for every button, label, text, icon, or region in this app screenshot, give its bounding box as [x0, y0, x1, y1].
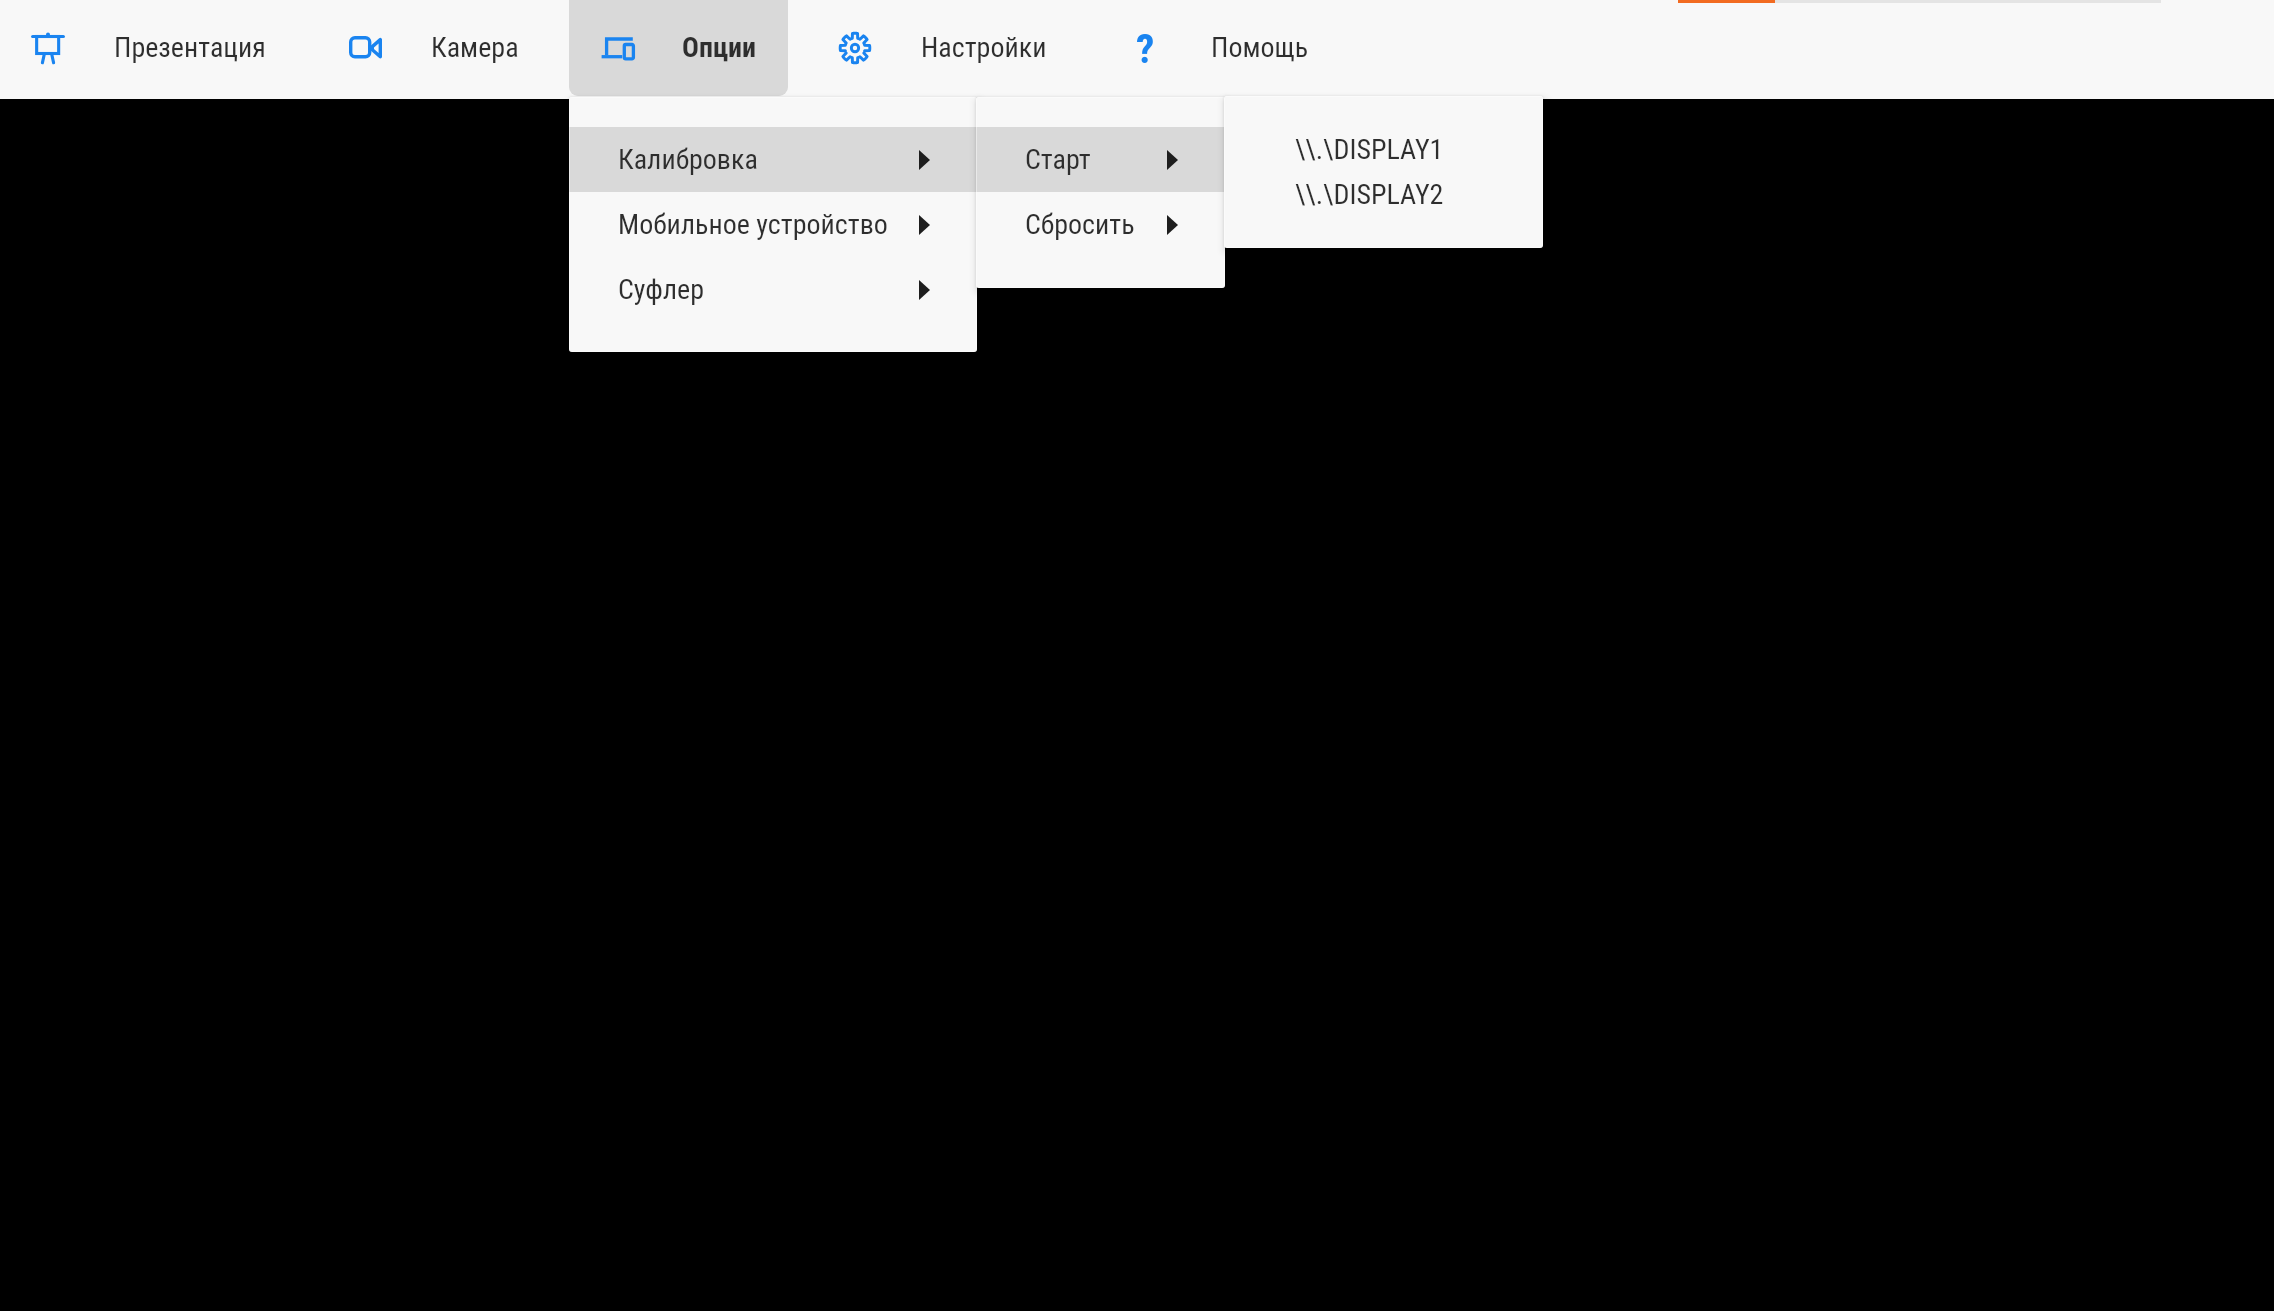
button[interactable]: Презентация	[0, 0, 296, 96]
staticText: Помощь	[1211, 31, 1309, 64]
button[interactable]: Опции	[569, 0, 788, 96]
staticText: Мобильное устройство	[618, 208, 888, 241]
staticText: Старт	[1025, 143, 1091, 176]
button[interactable]: Суфлер	[569, 257, 977, 322]
button[interactable]: Калибровка	[569, 127, 977, 192]
button[interactable]: \\.\DISPLAY1	[1224, 127, 1543, 172]
staticText: \\.\DISPLAY1	[1295, 133, 1444, 166]
staticText: ?	[1136, 25, 1155, 73]
button[interactable]: Помощь	[1105, 0, 1339, 96]
staticText: Суфлер	[618, 273, 704, 306]
button[interactable]: Старт	[976, 127, 1225, 192]
button[interactable]: Мобильное устройство	[569, 192, 977, 257]
staticText: \\.\DISPLAY2	[1295, 178, 1444, 211]
staticText: Презентация	[114, 31, 266, 64]
button[interactable]: Камера	[317, 0, 550, 96]
staticText: Калибровка	[618, 143, 758, 176]
staticText: Камера	[431, 31, 519, 64]
button[interactable]: \\.\DISPLAY2	[1224, 172, 1543, 217]
staticText: Сбросить	[1025, 208, 1135, 241]
button[interactable]: Сбросить	[976, 192, 1225, 257]
staticText: Настройки	[921, 31, 1047, 64]
staticText: Опции	[682, 31, 757, 64]
button[interactable]: Настройки	[807, 0, 1077, 96]
